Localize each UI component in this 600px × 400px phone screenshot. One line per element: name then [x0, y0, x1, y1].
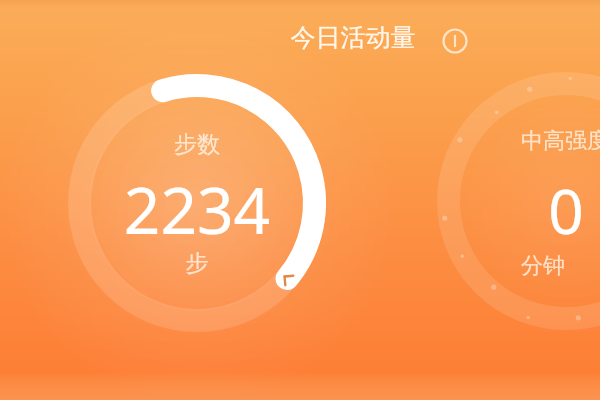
button[interactable]: 今日活动量 — [268, 22, 438, 60]
staticText: 步 — [127, 249, 267, 283]
staticText: 中高强度 — [521, 127, 600, 155]
staticText: 今日活动量 — [268, 22, 438, 60]
staticText: 2234 — [77, 166, 317, 242]
button[interactable]: Info — [440, 26, 470, 56]
staticText: 0 — [548, 168, 584, 252]
staticText: 分钟 — [521, 252, 565, 280]
staticText: 步数 — [127, 130, 267, 164]
